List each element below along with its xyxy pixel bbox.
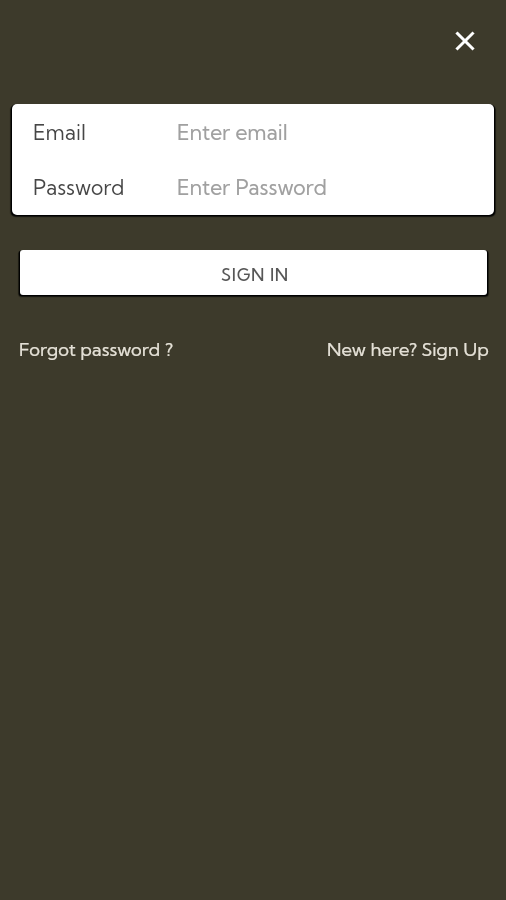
button[interactable]: Close (441, 17, 489, 65)
button[interactable]: Password (12, 159, 494, 214)
staticText: Email (33, 119, 177, 145)
button[interactable]: SIGN IN (20, 250, 487, 295)
staticText: Forgot password ? (19, 338, 174, 361)
button[interactable]: New here? Sign Up (327, 338, 489, 361)
staticText: Enter Password (177, 174, 327, 200)
staticText: SIGN IN (221, 264, 289, 285)
staticText: New here? Sign Up (327, 338, 489, 361)
button[interactable]: Forgot password ? (19, 338, 174, 361)
button[interactable]: Email (12, 104, 494, 159)
staticText: Enter email (177, 119, 288, 145)
staticText: Password (33, 174, 177, 200)
